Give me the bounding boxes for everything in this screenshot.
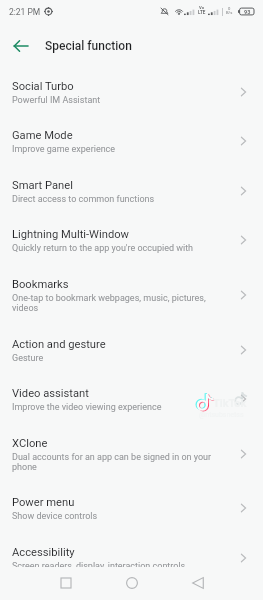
button[interactable]: Smart Panel (0, 167, 263, 217)
staticText: Screen readers, display, interaction con… (12, 561, 186, 567)
staticText: @ntsubsnetss (199, 411, 244, 419)
staticText: Improve the video viewing experience (12, 402, 162, 412)
staticText: One-tap to bookmark webpages, music, pic… (12, 293, 221, 313)
staticText: 0 (228, 7, 231, 11)
button[interactable]: Action and gesture (0, 326, 263, 376)
button[interactable]: XClone (0, 425, 263, 485)
staticText: TikTok (213, 397, 247, 410)
button[interactable]: Back (165, 567, 231, 600)
staticText: Bookmarks (12, 278, 69, 291)
button[interactable]: Game Mode (0, 117, 263, 167)
staticText: LTE (198, 10, 206, 15)
button[interactable]: Bookmarks (0, 266, 263, 326)
staticText: Direct access to common functions (12, 194, 155, 204)
staticText: Show device controls (12, 511, 98, 521)
button[interactable]: Social Turbo (0, 68, 263, 118)
staticText: Smart Panel (12, 179, 73, 192)
staticText: B/s (226, 11, 233, 15)
staticText: Special function (45, 39, 132, 53)
staticText: 2:21 PM (9, 7, 41, 17)
staticText: XClone (12, 437, 48, 450)
staticText: Game Mode (12, 129, 73, 142)
staticText: Gesture (12, 353, 44, 363)
staticText: Action and gesture (12, 338, 106, 351)
button[interactable]: Video assistant (0, 375, 263, 425)
button[interactable]: Power menu (0, 484, 263, 534)
button[interactable]: Back (6, 31, 36, 61)
staticText: 93 (244, 9, 251, 15)
button[interactable]: Home (99, 567, 165, 600)
staticText: Improve game experience (12, 144, 116, 154)
staticText: Video assistant (12, 387, 89, 400)
button[interactable]: Accessibility (0, 534, 263, 567)
staticText: Vo (199, 6, 205, 10)
staticText: Social Turbo (12, 80, 74, 93)
staticText: Power menu (12, 496, 75, 509)
staticText: Lightning Multi-Window (12, 228, 130, 241)
button[interactable]: Recents (33, 567, 99, 600)
staticText: Quickly return to the app you're occupie… (12, 243, 194, 253)
staticText: Powerful IM Assistant (12, 95, 101, 105)
button[interactable]: Lightning Multi-Window (0, 216, 263, 266)
staticText: Dual accounts for an app can be signed i… (12, 452, 221, 472)
staticText: Accessibility (12, 546, 75, 559)
